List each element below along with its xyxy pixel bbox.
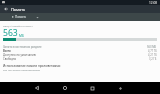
staticText: Память: [11, 7, 26, 12]
staticText: Свободно: [3, 57, 17, 61]
button[interactable]: Свободно: [3, 57, 157, 61]
staticText: 12:08: [149, 1, 158, 5]
staticText: МБ: [19, 34, 24, 38]
staticText: Занято в системном разделе: [3, 45, 42, 49]
button[interactable]: Recent apps: [79, 82, 105, 94]
staticText: Всего: [3, 49, 11, 53]
staticText: Использование памяти приложениями: [3, 64, 61, 68]
staticText: 563: [3, 27, 18, 39]
button[interactable]: Screenshot: [107, 82, 133, 94]
button[interactable]: Back: [24, 82, 50, 94]
button[interactable]: Home: [52, 82, 78, 94]
staticText: ОБЩИЙ ОБЪЁМ ПАМЯТИ: [3, 24, 33, 27]
button[interactable]: Всего: [3, 49, 157, 53]
button[interactable]: Память: [12, 13, 160, 21]
staticText: 3,2 ГБ: [149, 57, 157, 61]
staticText: 563 МБ: [147, 45, 157, 49]
staticText: Доступно по умолчанию: [3, 53, 36, 57]
staticText: 563 МБ занято приложениями: [3, 68, 40, 71]
button[interactable]: Занято в системном разделе: [3, 45, 157, 49]
button[interactable]: Back: [0, 5, 11, 13]
staticText: 4,77 ГБ: [148, 49, 157, 53]
button[interactable]: Доступно по умолчанию: [3, 53, 157, 57]
staticText: 4,21 ГБ: [148, 53, 157, 57]
staticText: Память: [15, 15, 27, 19]
